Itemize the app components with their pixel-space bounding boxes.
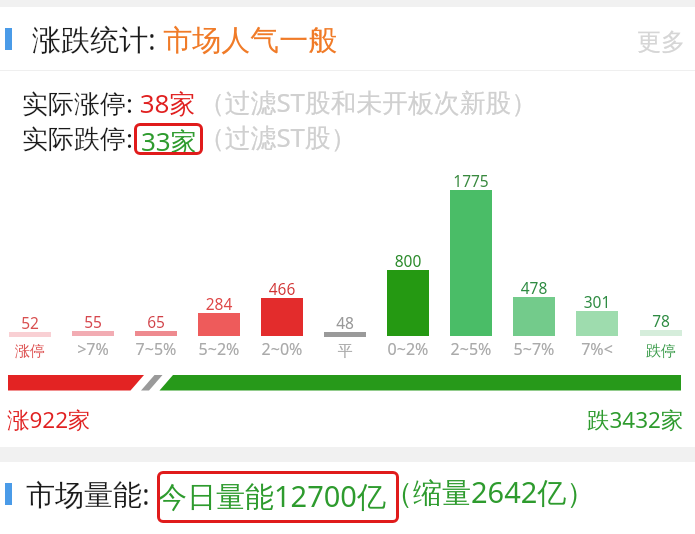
button[interactable]: 涨跌统计: 市场人气一般 [0,7,695,70]
staticText: 466 [251,278,313,299]
staticText: 实际涨停: 38家 [22,85,196,121]
staticText: 478 [503,277,565,298]
staticText: 2~5% [440,338,502,360]
staticText: （过滤ST股和未开板次新股） [199,84,538,119]
button[interactable]: 33家 [134,123,203,155]
staticText: 5~7% [503,338,565,360]
staticText: （过滤ST股） [199,119,357,154]
staticText: 78 [630,310,692,331]
staticText: 涨停 [0,342,61,361]
staticText: 涨跌统计: 市场人气一般 [32,19,338,59]
staticText: 0~2% [377,338,439,360]
staticText: 301 [566,291,628,312]
staticText: 65 [125,311,187,332]
staticText: 48 [314,312,376,333]
staticText: >7% [62,338,124,360]
staticText: 284 [188,293,250,314]
staticText: 跌停 [630,342,692,361]
staticText: （缩量2642亿） [384,472,596,512]
staticText: 2~0% [251,338,313,360]
staticText: 平 [314,342,376,361]
staticText: 更多 [637,27,685,57]
staticText: 7%< [566,338,628,360]
staticText: 33家 [141,123,197,155]
staticText: 实际跌停: [22,120,133,156]
staticText: 1775 [440,170,502,191]
staticText: 涨922家 [7,404,91,435]
staticText: 跌3432家 [587,404,684,435]
staticText: 800 [377,250,439,271]
button[interactable]: 今日量能12700亿 [157,471,399,523]
staticText: 5~2% [188,338,250,360]
staticText: 市场量能: [26,474,150,514]
staticText: 52 [0,312,61,333]
staticText: 7~5% [125,338,187,360]
staticText: 55 [62,311,124,332]
staticText: 今日量能12700亿 [158,476,386,516]
